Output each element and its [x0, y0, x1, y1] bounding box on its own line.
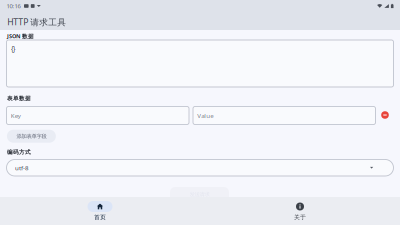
button[interactable]: 删除表单字段: [378, 108, 392, 122]
button[interactable]: utf-8: [6, 159, 393, 176]
staticText: utf-8: [15, 164, 29, 172]
staticText: {}: [11, 44, 15, 53]
button[interactable]: 首页: [70, 200, 130, 222]
staticText: 编码方式: [7, 149, 31, 156]
button[interactable]: 添加表单字段: [7, 130, 56, 143]
staticText: 表单数据: [7, 95, 31, 102]
staticText: 首页: [94, 214, 106, 221]
staticText: 10:16: [6, 2, 20, 10]
staticText: 关于: [294, 214, 306, 221]
staticText: Key: [11, 111, 21, 120]
button[interactable]: 关于: [270, 200, 330, 222]
staticText: JSON 数据: [7, 32, 34, 40]
staticText: 添加表单字段: [16, 133, 46, 139]
staticText: HTTP 请求工具: [7, 16, 66, 28]
staticText: Value: [197, 111, 213, 120]
